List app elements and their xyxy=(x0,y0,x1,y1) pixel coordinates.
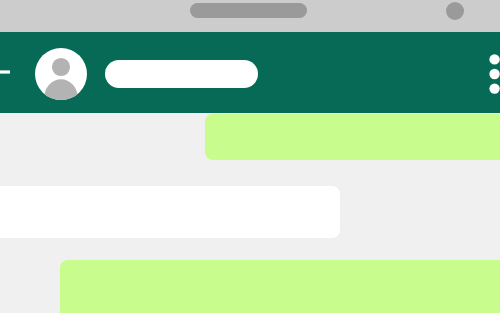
button[interactable]: Contact avatar xyxy=(35,48,87,100)
button[interactable]: Back xyxy=(0,54,12,90)
button[interactable] xyxy=(205,114,500,160)
button[interactable]: More options xyxy=(484,50,500,98)
button[interactable] xyxy=(105,60,258,88)
